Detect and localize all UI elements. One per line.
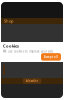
button[interactable]: Accept all <box>41 53 61 61</box>
staticText: Shop <box>4 18 14 24</box>
staticText: Cookies <box>3 43 19 49</box>
staticText: We use cookies to improve your visit. <box>3 50 54 53</box>
staticText: Subscribe <box>25 79 38 83</box>
button[interactable]: Subscribe <box>22 78 41 84</box>
staticText: Accept all <box>44 55 58 59</box>
